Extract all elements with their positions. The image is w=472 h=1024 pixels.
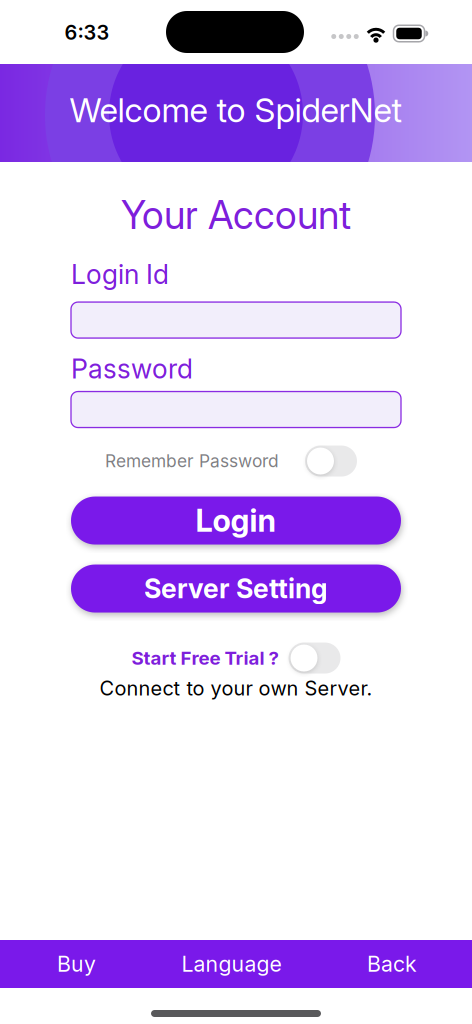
button[interactable]: Buy — [49, 940, 104, 988]
button[interactable]: Remember Password — [305, 445, 357, 476]
button[interactable]: Start Free Trial — [288, 642, 340, 673]
staticText: 6:33 — [64, 21, 109, 44]
button[interactable]: Language — [173, 940, 289, 988]
staticText: Back — [367, 951, 417, 977]
staticText: Server Setting — [144, 573, 328, 604]
staticText: Connect to your own Server. — [99, 676, 372, 700]
staticText: Your Account — [121, 192, 351, 238]
button[interactable]: Login — [71, 496, 401, 544]
staticText: Welcome to SpiderNet — [69, 90, 402, 130]
button[interactable]: Server Setting — [71, 564, 401, 612]
button[interactable]: Back — [359, 940, 425, 988]
staticText: Language — [181, 951, 281, 977]
staticText: Buy — [57, 951, 96, 977]
staticText: Password — [71, 353, 193, 385]
staticText: Login — [195, 502, 276, 539]
staticText: Login Id — [71, 259, 169, 290]
staticText: Remember Password — [105, 451, 279, 471]
staticText: Start Free Trial ? — [131, 647, 278, 669]
